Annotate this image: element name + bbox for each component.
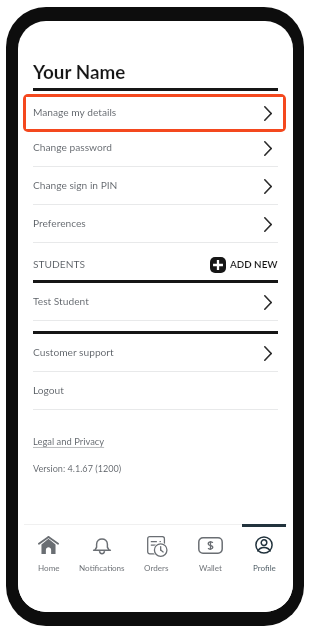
button[interactable]: Orders bbox=[129, 525, 183, 612]
staticText: Version: 4.1.67 (1200) bbox=[33, 463, 122, 474]
staticText: Change password bbox=[33, 141, 112, 153]
staticText: ADD NEW bbox=[230, 258, 278, 270]
other: Wallet bbox=[198, 537, 223, 554]
other: Notifications bbox=[93, 537, 111, 554]
other: Profile bbox=[255, 536, 273, 554]
staticText: Your Name bbox=[33, 60, 126, 83]
staticText: Profile bbox=[253, 563, 276, 573]
button[interactable]: Preferences bbox=[18, 205, 293, 243]
staticText: Change sign in PIN bbox=[33, 179, 118, 191]
button[interactable]: Home bbox=[22, 525, 75, 612]
staticText: Customer support bbox=[33, 346, 114, 358]
button[interactable]: Notifications bbox=[75, 525, 129, 612]
button[interactable]: Logout bbox=[18, 372, 293, 410]
staticText: Orders bbox=[144, 563, 169, 573]
staticText: Wallet bbox=[199, 563, 222, 573]
staticText: Manage my details bbox=[33, 106, 117, 118]
other: Orders bbox=[147, 536, 166, 555]
staticText: Logout bbox=[33, 384, 64, 396]
staticText: Preferences bbox=[33, 217, 86, 229]
button[interactable]: Customer support bbox=[18, 334, 293, 372]
button[interactable]: Manage my details bbox=[18, 91, 293, 129]
button[interactable]: Change sign in PIN bbox=[18, 167, 293, 205]
button[interactable]: ADD NEW bbox=[210, 257, 278, 273]
button[interactable]: Test Student bbox=[18, 283, 293, 321]
staticText: Test Student bbox=[33, 295, 89, 307]
staticText: Notifications bbox=[79, 563, 125, 573]
staticText: Home bbox=[38, 563, 60, 573]
staticText: Manage my details bbox=[33, 103, 117, 115]
button[interactable]: Legal and Privacy bbox=[18, 436, 105, 447]
staticText: STUDENTS bbox=[33, 258, 85, 270]
button[interactable]: Wallet bbox=[183, 525, 237, 612]
button[interactable]: Profile bbox=[237, 525, 291, 612]
other: Home bbox=[38, 536, 59, 554]
button[interactable]: Change password bbox=[18, 129, 293, 167]
